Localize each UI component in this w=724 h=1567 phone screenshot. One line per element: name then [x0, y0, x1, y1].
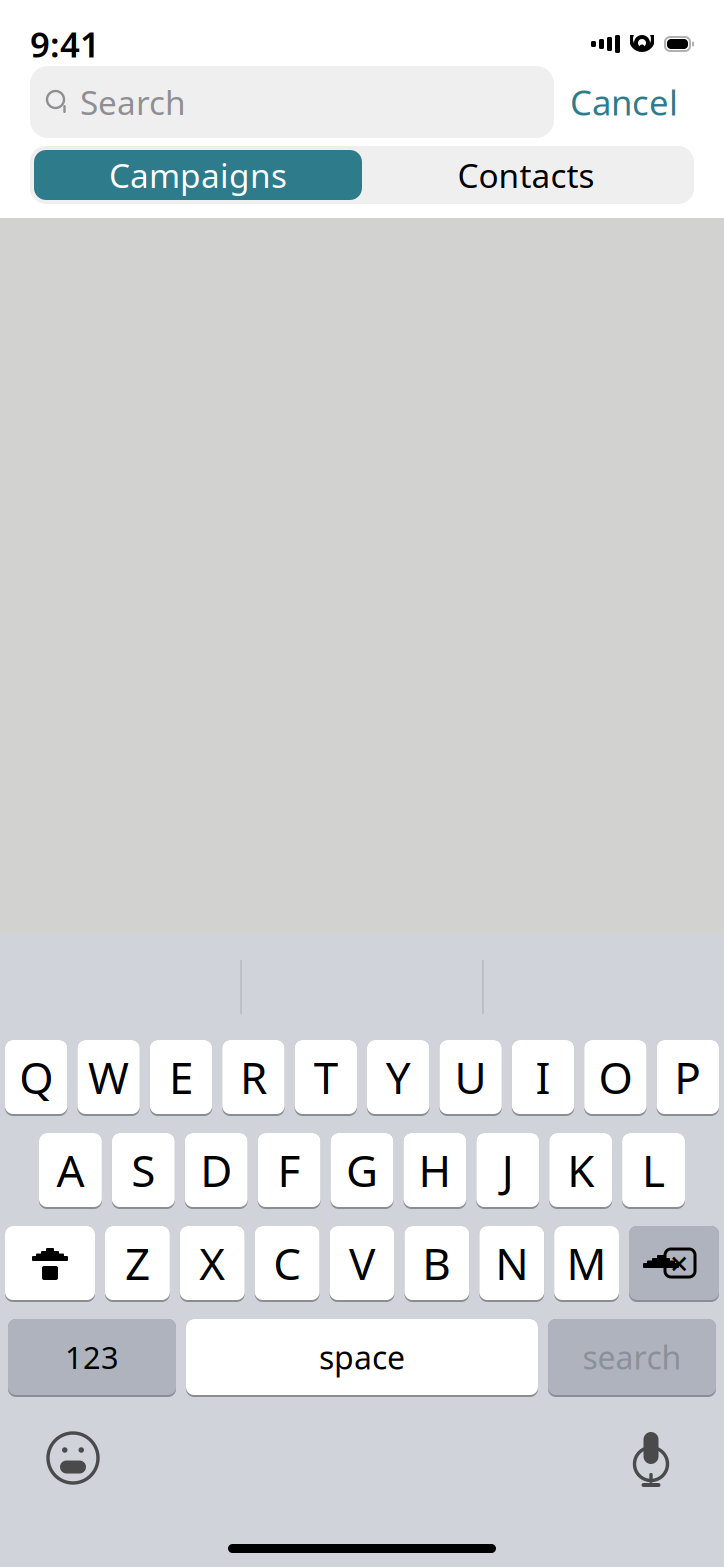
staticText: J	[502, 1141, 514, 1199]
button[interactable]: E	[150, 1040, 212, 1116]
staticText: I	[535, 1048, 550, 1106]
staticText: N	[495, 1235, 528, 1293]
staticText: N	[495, 1234, 528, 1292]
button[interactable]: M	[554, 1226, 619, 1302]
button[interactable]: U	[439, 1040, 502, 1116]
staticText: A	[56, 1142, 84, 1200]
staticText: E	[169, 1048, 193, 1106]
button[interactable]: D	[185, 1133, 248, 1209]
staticText: X	[199, 1234, 225, 1292]
button[interactable]: T	[295, 1040, 357, 1116]
button[interactable]: P	[657, 1040, 719, 1116]
staticText: Cancel	[570, 79, 678, 125]
staticText: P	[674, 1049, 701, 1107]
button[interactable]: Q	[5, 1040, 67, 1116]
button[interactable]: X	[180, 1226, 245, 1302]
staticText: Y	[386, 1049, 411, 1107]
staticText: W	[88, 1048, 129, 1106]
staticText: O	[598, 1048, 632, 1106]
staticText: F	[278, 1142, 301, 1200]
button[interactable]: S	[112, 1133, 175, 1209]
button[interactable]: V	[330, 1226, 394, 1302]
staticText: search	[582, 1336, 681, 1378]
button[interactable]: Dictation	[616, 1423, 686, 1493]
button[interactable]: Shift	[5, 1226, 95, 1302]
staticText: J	[502, 1142, 514, 1200]
staticText: T	[314, 1048, 338, 1106]
staticText: Z	[125, 1234, 150, 1292]
staticText: G	[346, 1141, 378, 1199]
button[interactable]: N	[479, 1226, 544, 1302]
staticText: D	[200, 1142, 232, 1200]
staticText: F	[278, 1141, 301, 1199]
button[interactable]: Search	[30, 66, 554, 138]
button[interactable]: A	[39, 1133, 102, 1209]
button[interactable]: J	[476, 1133, 539, 1209]
staticText: L	[642, 1141, 665, 1199]
button[interactable]: F	[258, 1133, 321, 1209]
button[interactable]: K	[549, 1133, 612, 1209]
staticText: Z	[125, 1235, 150, 1293]
button[interactable]: search	[548, 1319, 716, 1397]
button[interactable]: W	[77, 1040, 140, 1116]
staticText: V	[349, 1235, 375, 1293]
staticText: C	[273, 1234, 301, 1292]
button[interactable]: Contacts	[362, 150, 690, 200]
button[interactable]: O	[584, 1040, 647, 1116]
staticText: W	[88, 1049, 129, 1107]
button[interactable]: space	[186, 1319, 538, 1397]
staticText: M	[567, 1235, 607, 1293]
staticText: E	[169, 1049, 193, 1107]
staticText: B	[422, 1234, 451, 1292]
staticText: space	[319, 1336, 405, 1378]
staticText: K	[567, 1141, 594, 1199]
button[interactable]: B	[404, 1226, 469, 1302]
button[interactable]: Emoji	[38, 1423, 108, 1493]
staticText: T	[314, 1049, 338, 1107]
staticText: Y	[386, 1048, 411, 1106]
staticText: O	[598, 1049, 632, 1107]
staticText: ×	[670, 1242, 688, 1284]
staticText: R	[240, 1049, 267, 1107]
staticText: space	[319, 1337, 405, 1379]
staticText: B	[422, 1235, 451, 1293]
staticText: search	[582, 1337, 681, 1379]
staticText: U	[455, 1049, 487, 1107]
button[interactable]: Cancel	[554, 66, 694, 138]
staticText: Contacts	[457, 153, 594, 197]
staticText: G	[346, 1142, 378, 1200]
staticText: R	[240, 1048, 267, 1106]
staticText: ×	[670, 1243, 688, 1285]
staticText: H	[418, 1142, 451, 1200]
button[interactable]: 123	[8, 1319, 176, 1397]
staticText: A	[56, 1141, 84, 1199]
staticText: S	[131, 1141, 155, 1199]
button[interactable]: R	[222, 1040, 285, 1116]
staticText: V	[349, 1234, 375, 1292]
button[interactable]: Delete	[629, 1226, 719, 1302]
staticText: Q	[19, 1048, 53, 1106]
button[interactable]: H	[403, 1133, 466, 1209]
button[interactable]: Y	[367, 1040, 429, 1116]
staticText: P	[674, 1048, 701, 1106]
staticText: S	[131, 1142, 155, 1200]
staticText: 123	[65, 1338, 119, 1378]
staticText: Search	[80, 80, 186, 124]
staticText: C	[273, 1235, 301, 1293]
staticText: M	[567, 1234, 607, 1292]
staticText: Campaigns	[109, 153, 287, 197]
button[interactable]: I	[512, 1040, 574, 1116]
button[interactable]: Campaigns	[34, 150, 362, 200]
staticText: Q	[19, 1049, 53, 1107]
staticText: L	[642, 1142, 665, 1200]
staticText: U	[455, 1048, 487, 1106]
staticText: I	[535, 1049, 550, 1107]
button[interactable]: C	[255, 1226, 320, 1302]
button[interactable]: Z	[105, 1226, 170, 1302]
button[interactable]: G	[331, 1133, 393, 1209]
staticText: X	[199, 1235, 225, 1293]
button[interactable]: L	[622, 1133, 685, 1209]
staticText: K	[567, 1142, 594, 1200]
staticText: H	[418, 1141, 451, 1199]
staticText: 123	[65, 1337, 119, 1377]
